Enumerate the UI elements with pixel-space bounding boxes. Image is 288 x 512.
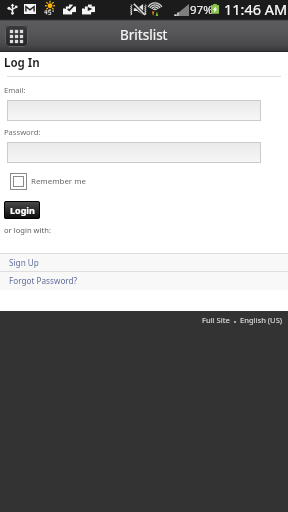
staticText: 97% — [190, 2, 213, 18]
staticText: Sign Up — [9, 257, 39, 268]
staticText: Britslist — [120, 26, 168, 44]
staticText: or login with: — [4, 225, 51, 235]
button[interactable]: Apps — [5, 25, 28, 47]
staticText: Email: — [4, 85, 26, 95]
staticText: Remember me — [31, 176, 87, 187]
button[interactable]: Remember me — [10, 173, 87, 190]
button[interactable]: Sign Up — [0, 254, 288, 271]
button[interactable] — [7, 100, 261, 121]
staticText: Password: — [4, 127, 41, 137]
button[interactable]: Forgot Password? — [0, 272, 288, 289]
button[interactable]: Login — [4, 201, 40, 219]
button[interactable]: Full Site — [202, 315, 230, 325]
button[interactable]: English (US) — [240, 315, 283, 325]
staticText: 11:46 AM — [224, 0, 288, 18]
button[interactable] — [7, 142, 261, 163]
staticText: Forgot Password? — [9, 275, 78, 286]
staticText: Login — [10, 204, 35, 216]
staticText: Log In — [4, 55, 40, 71]
